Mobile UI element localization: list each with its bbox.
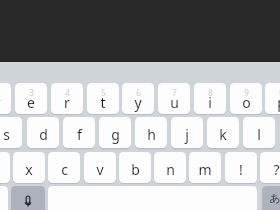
staticText: c <box>61 160 68 179</box>
button[interactable]: 9 <box>230 83 262 114</box>
button[interactable]: z <box>0 152 10 183</box>
button[interactable]: ! <box>225 152 257 183</box>
button[interactable]: g <box>99 117 131 148</box>
button[interactable]: 5 <box>87 83 119 114</box>
staticText: w <box>0 93 1 112</box>
staticText: あ <box>269 191 280 205</box>
staticText: m <box>198 160 212 179</box>
staticText: g <box>111 125 120 144</box>
button[interactable]: 7 <box>158 83 190 114</box>
button[interactable]: k <box>207 117 239 148</box>
button[interactable]: v <box>84 152 116 183</box>
staticText: r <box>64 93 70 112</box>
staticText: 3 <box>29 87 34 98</box>
button[interactable]: ? <box>260 152 280 183</box>
button[interactable]: x <box>13 152 45 183</box>
staticText: s <box>3 125 10 144</box>
button[interactable]: n <box>154 152 186 183</box>
button[interactable]: Symbols <box>0 186 8 210</box>
staticText: 9 <box>244 87 249 98</box>
staticText: p <box>277 93 280 112</box>
button[interactable]: h <box>135 117 167 148</box>
staticText: 8 <box>208 87 213 98</box>
staticText: j <box>185 125 189 144</box>
button[interactable]: d <box>27 117 59 148</box>
staticText: ! <box>239 160 243 179</box>
button[interactable]: 0 <box>265 83 280 114</box>
staticText: d <box>39 125 48 144</box>
staticText: 6 <box>136 87 141 98</box>
staticText: i <box>208 93 212 112</box>
staticText: t <box>100 93 106 112</box>
staticText: v <box>96 160 104 179</box>
staticText: o <box>242 93 251 112</box>
button[interactable]: 8 <box>194 83 226 114</box>
staticText: 7 <box>172 87 177 98</box>
staticText: f <box>77 125 82 144</box>
button[interactable]: 2 <box>0 83 11 114</box>
button[interactable]: f <box>63 117 95 148</box>
button[interactable]: 4 <box>51 83 83 114</box>
staticText: e <box>27 93 35 112</box>
button[interactable]: c <box>48 152 80 183</box>
button[interactable]: 3 <box>15 83 47 114</box>
staticText: y <box>134 93 142 112</box>
staticText: l <box>257 125 261 144</box>
button[interactable]: Voice input <box>11 186 45 210</box>
button[interactable]: l <box>243 117 275 148</box>
button[interactable]: j <box>171 117 203 148</box>
staticText: u <box>170 93 179 112</box>
button[interactable]: あ <box>262 186 280 210</box>
button[interactable]: 6 <box>122 83 154 114</box>
staticText: h <box>147 125 156 144</box>
staticText: 4 <box>65 87 70 98</box>
staticText: n <box>166 160 175 179</box>
button[interactable]: s <box>0 117 22 148</box>
staticText: ? <box>273 160 280 179</box>
staticText: x <box>25 160 33 179</box>
staticText: 0 <box>279 87 280 98</box>
button[interactable]: m <box>189 152 221 183</box>
button[interactable]: b <box>119 152 151 183</box>
staticText: b <box>131 160 140 179</box>
staticText: k <box>219 125 227 144</box>
staticText: 5 <box>101 87 106 98</box>
